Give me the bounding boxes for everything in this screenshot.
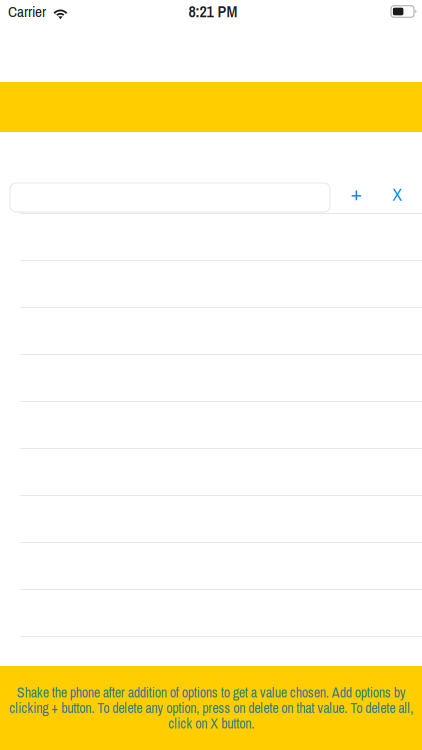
button[interactable]: Option row (0, 542, 422, 589)
button[interactable]: Option row (0, 307, 422, 354)
button[interactable]: Option row (0, 448, 422, 495)
staticText: + (350, 181, 361, 208)
button[interactable]: Option row (0, 401, 422, 448)
button[interactable]: Option row (0, 260, 422, 307)
button[interactable]: Add option (330, 183, 382, 212)
button[interactable]: Option row (0, 636, 422, 683)
staticText: 8:21 PM (188, 1, 237, 22)
button[interactable]: Option row (0, 213, 422, 260)
button[interactable]: Option row (0, 354, 422, 401)
staticText: Carrier (8, 1, 46, 22)
staticText: Shake the phone after addition of option… (9, 685, 413, 731)
button[interactable]: Option row (0, 683, 422, 730)
button[interactable]: Option row (0, 589, 422, 636)
button[interactable]: Option row (0, 495, 422, 542)
staticText: X (392, 184, 401, 205)
button[interactable]: Delete all options (382, 183, 422, 212)
